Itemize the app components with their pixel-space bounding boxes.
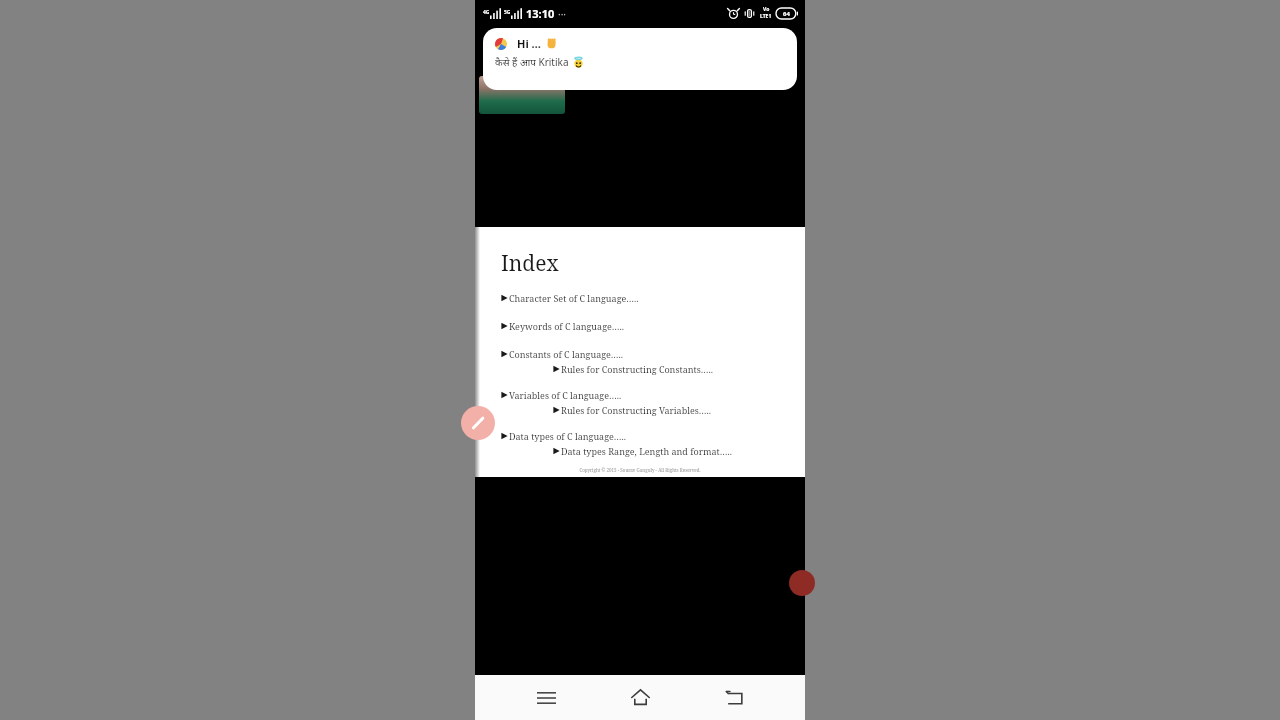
button[interactable]: Record [789, 570, 815, 596]
staticText: Index [501, 249, 559, 278]
staticText: Rules for Constructing Variables….. [561, 404, 712, 416]
staticText: Hi … [517, 36, 541, 51]
staticText: Constants of C language….. [509, 348, 624, 360]
button[interactable]: Hi … [483, 28, 797, 90]
staticText: LTE1 [760, 13, 772, 20]
staticText: Data types of C language….. [509, 430, 627, 442]
staticText: 64 [783, 10, 790, 18]
staticText: Rules for Constructing Constants….. [561, 363, 713, 375]
staticText: कैसे हैं आप Kritika [495, 55, 569, 69]
button[interactable]: Back [711, 675, 759, 720]
staticText: Keywords of C language….. [509, 320, 625, 332]
staticText: 13:10 [526, 6, 555, 21]
button[interactable]: Home [616, 675, 664, 720]
staticText: Variables of C language….. [509, 389, 622, 401]
staticText: 5G [504, 9, 511, 16]
staticText: Vo [763, 6, 770, 13]
staticText: Data types Range, Length and format….. [561, 445, 732, 457]
button[interactable]: Edit [461, 406, 495, 440]
staticText: ··· [558, 7, 567, 21]
staticText: Copyright © 2015 - Sourav Ganguly - All … [475, 467, 805, 473]
staticText: Character Set of C language….. [509, 292, 639, 304]
button[interactable]: Recents [522, 675, 570, 720]
staticText: 4G [483, 9, 490, 16]
